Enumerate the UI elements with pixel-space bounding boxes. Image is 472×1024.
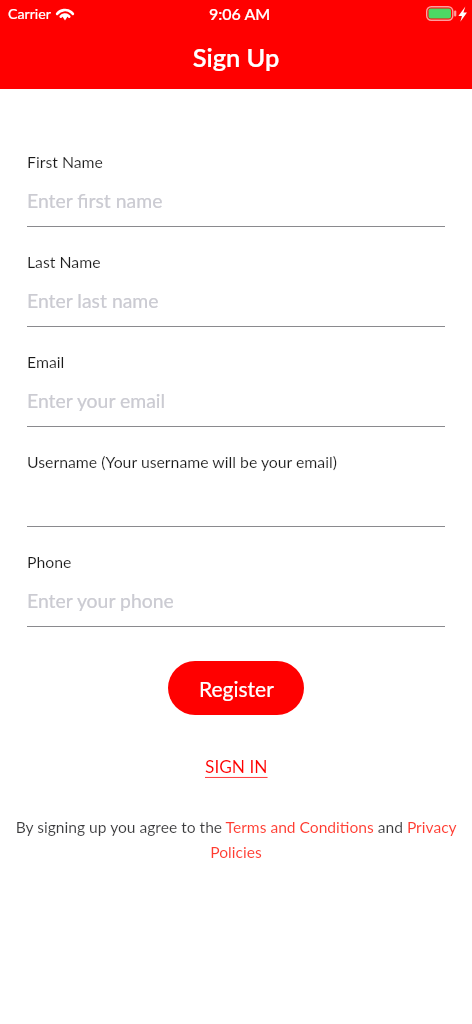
staticText: By signing up you agree to the Terms and…: [8, 818, 464, 861]
staticText: Enter your email: [27, 389, 166, 412]
button[interactable]: Username (Your username will be your ema…: [0, 448, 472, 527]
staticText: 9:06 AM: [209, 4, 271, 23]
staticText: Enter last name: [27, 289, 159, 312]
staticText: Carrier: [8, 5, 51, 22]
staticText: Enter your phone: [27, 589, 174, 612]
button[interactable]: Phone: [0, 548, 472, 627]
button[interactable]: Last Name: [0, 248, 472, 327]
button[interactable]: First Name: [0, 148, 472, 227]
button[interactable]: SIGN IN: [197, 752, 276, 781]
staticText: Email: [27, 352, 65, 371]
staticText: Register: [199, 676, 274, 701]
staticText: Phone: [27, 552, 72, 571]
staticText: Username (Your username will be your ema…: [27, 452, 337, 471]
other: Wi-Fi: [56, 4, 74, 20]
staticText: Sign Up: [0, 42, 472, 72]
staticText: SIGN IN: [205, 756, 268, 777]
staticText: Last Name: [27, 252, 101, 271]
other: Battery charging: [426, 6, 458, 21]
staticText: First Name: [27, 152, 103, 171]
button[interactable]: Email: [0, 348, 472, 427]
button[interactable]: Register: [168, 661, 304, 715]
staticText: Enter first name: [27, 189, 163, 212]
